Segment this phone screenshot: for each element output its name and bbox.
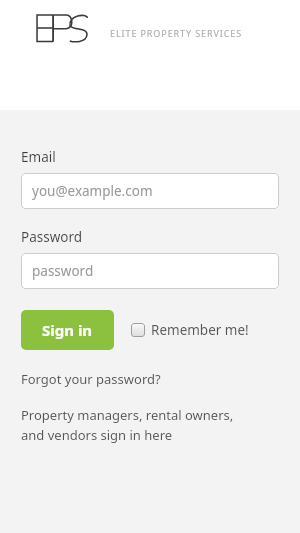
staticText: Email	[21, 148, 56, 166]
button[interactable]: Forgot your password?	[21, 370, 161, 388]
button[interactable]: Sign in	[21, 310, 114, 350]
button[interactable]: Property managers, rental owners, and ve…	[21, 406, 236, 444]
button[interactable]: you@example.com	[21, 173, 279, 209]
staticText: Password	[21, 228, 83, 246]
staticText: Sign in	[42, 320, 93, 340]
other: Elite Property Services logo	[36, 11, 88, 45]
staticText: you@example.com	[32, 182, 153, 200]
button[interactable]: Remember me!	[131, 321, 249, 339]
staticText: Remember me!	[151, 321, 249, 339]
staticText: password	[32, 262, 94, 280]
staticText: ELITE PROPERTY SERVICES	[110, 27, 243, 39]
button[interactable]: password	[21, 253, 279, 289]
